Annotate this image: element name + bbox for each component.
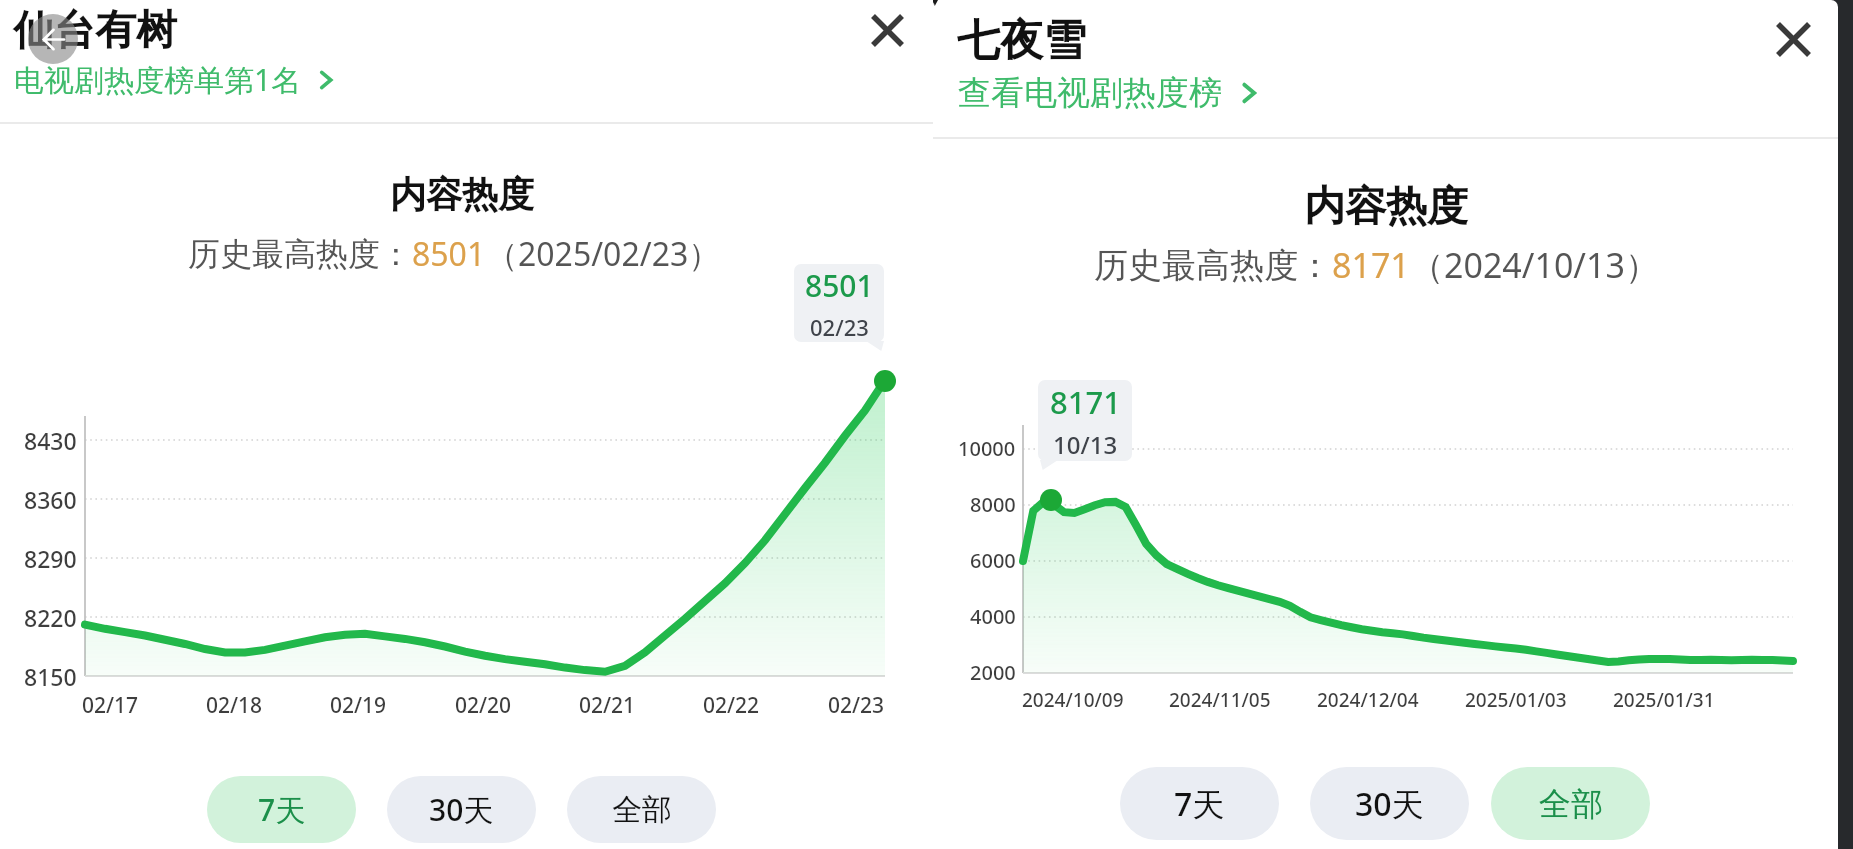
staticText: 电视剧热度榜单第1名 — [14, 59, 302, 100]
button[interactable]: 全部 — [567, 776, 716, 843]
staticText: 02/19 — [330, 691, 387, 720]
staticText: 02/21 — [579, 691, 636, 720]
staticText: 七夜雪 — [957, 14, 1086, 68]
staticText: 2025/01/31 — [1613, 687, 1715, 713]
staticText: 8501 — [805, 265, 874, 306]
staticText: （2024/10/13） — [1410, 242, 1659, 288]
staticText: 4000 — [970, 603, 1016, 630]
button[interactable]: 全部 — [1491, 767, 1650, 840]
staticText: 7天 — [258, 789, 306, 830]
button[interactable]: 30天 — [387, 776, 536, 843]
staticText: 查看电视剧热度榜 — [958, 72, 1222, 114]
staticText: （2025/02/23） — [486, 232, 721, 276]
staticText: 10/13 — [1053, 428, 1118, 461]
staticText: 8360 — [24, 484, 77, 515]
staticText: 02/18 — [206, 691, 263, 720]
staticText: 02/23 — [828, 691, 885, 720]
staticText: 02/17 — [82, 691, 139, 720]
staticText: 8220 — [24, 602, 77, 633]
button[interactable]: Back — [28, 14, 78, 64]
staticText: 内容热度 — [390, 172, 534, 217]
staticText: 全部 — [1539, 784, 1603, 824]
staticText: 8000 — [970, 491, 1016, 518]
staticText: 8501 — [412, 232, 486, 276]
button[interactable]: 电视剧热度榜单第1名 — [14, 59, 338, 100]
staticText: 历史最高热度： — [1094, 244, 1332, 287]
staticText: 02/22 — [703, 691, 760, 720]
staticText: 全部 — [612, 791, 672, 829]
staticText: 2024/12/04 — [1317, 687, 1419, 713]
button[interactable]: 查看电视剧热度榜 — [958, 72, 1262, 114]
staticText: 8171 — [1050, 381, 1121, 423]
staticText: 历史最高热度： — [188, 234, 412, 274]
staticText: 2024/10/09 — [1022, 687, 1124, 713]
button[interactable]: 7天 — [207, 776, 356, 843]
staticText: 02/20 — [455, 691, 512, 720]
staticText: 内容热度 — [1304, 181, 1468, 233]
button[interactable]: Close — [1766, 12, 1821, 67]
staticText: 2000 — [970, 659, 1016, 686]
staticText: 7天 — [1174, 782, 1225, 826]
button[interactable]: 7天 — [1120, 767, 1279, 840]
staticText: 30天 — [429, 789, 494, 830]
staticText: 8171 — [1332, 242, 1410, 288]
staticText: 2024/11/05 — [1169, 687, 1271, 713]
staticText: 8290 — [24, 543, 77, 574]
staticText: 6000 — [970, 547, 1016, 574]
staticText: 02/23 — [810, 312, 869, 342]
staticText: 30天 — [1355, 782, 1424, 826]
staticText: 8150 — [24, 661, 77, 692]
staticText: 8430 — [24, 425, 77, 456]
button[interactable]: Close — [860, 3, 915, 58]
button[interactable]: 30天 — [1310, 767, 1469, 840]
staticText: 仙台有树 — [13, 5, 177, 57]
staticText: 10000 — [958, 435, 1016, 462]
staticText: 2025/01/03 — [1465, 687, 1567, 713]
